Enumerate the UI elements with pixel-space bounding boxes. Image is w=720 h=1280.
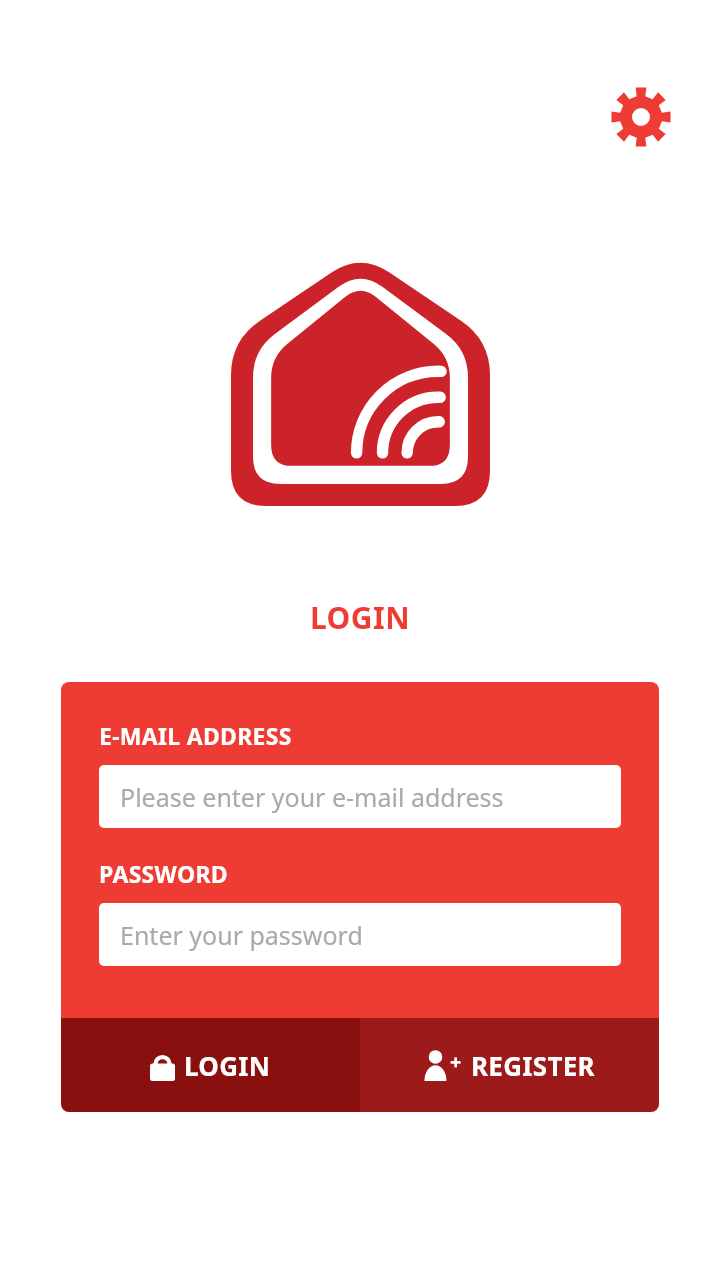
button[interactable]: Settings [611,87,671,147]
button[interactable]: REGISTER [360,1018,659,1112]
staticText: REGISTER [471,1048,595,1083]
button[interactable]: Enter your password [99,903,621,966]
staticText: Enter your password [120,918,363,952]
staticText: LOGIN [0,597,720,638]
staticText: LOGIN [184,1048,271,1083]
staticText: PASSWORD [99,858,228,889]
staticText: E-MAIL ADDRESS [99,720,292,751]
button[interactable]: Please enter your e-mail address [99,765,621,828]
staticText: Please enter your e-mail address [120,780,504,814]
button[interactable]: LOGIN [61,1018,360,1112]
